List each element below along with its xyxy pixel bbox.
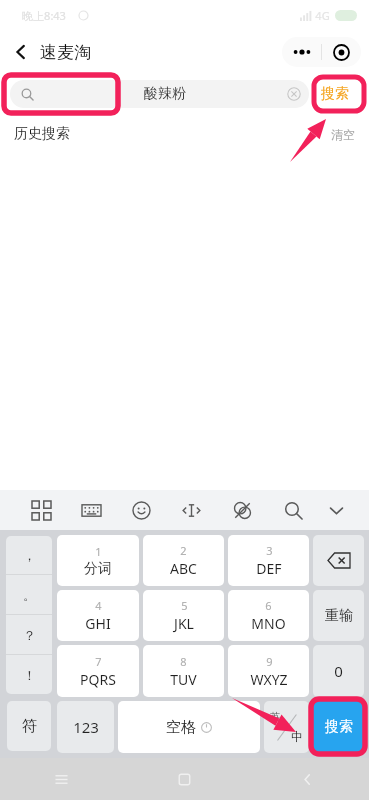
staticText: 5	[181, 598, 188, 613]
button[interactable]: 4	[57, 590, 139, 641]
staticText: 搜索	[321, 85, 349, 103]
staticText: 2	[180, 543, 187, 558]
staticText: 4G	[315, 8, 330, 23]
staticText: 3	[266, 543, 273, 558]
button[interactable]: Clip	[217, 490, 268, 530]
staticText: 中	[291, 729, 303, 744]
button[interactable]: 0	[313, 645, 364, 697]
staticText: 英	[270, 710, 280, 723]
staticText: ！	[23, 667, 36, 683]
button[interactable]: 重输	[313, 590, 364, 641]
staticText: MNO	[251, 614, 286, 633]
staticText: 酸辣粉	[43, 85, 287, 103]
button[interactable]: Clear	[287, 87, 301, 101]
staticText: 1	[95, 544, 102, 559]
button[interactable]: 2	[143, 535, 224, 586]
staticText: 。	[23, 587, 36, 603]
staticText: DEF	[256, 559, 282, 578]
button[interactable]: ，	[6, 536, 52, 574]
button[interactable]: 搜索	[309, 74, 361, 114]
button[interactable]: ！	[6, 655, 52, 694]
button[interactable]: Close	[322, 37, 361, 67]
staticText: 晚上8:43	[22, 8, 66, 23]
button[interactable]: 空格	[118, 701, 260, 753]
staticText: 历史搜索	[14, 125, 70, 143]
button[interactable]: 搜索	[313, 701, 364, 753]
staticText: 8	[180, 654, 187, 669]
staticText: GHI	[85, 614, 111, 633]
button[interactable]: 1	[57, 535, 139, 586]
button[interactable]: 9	[228, 645, 309, 697]
staticText: 分词	[84, 560, 112, 578]
button[interactable]: Emoji	[116, 490, 166, 530]
staticText: TUV	[170, 670, 197, 689]
button[interactable]: More	[282, 37, 321, 67]
button[interactable]: Apps	[16, 490, 66, 530]
staticText: ？	[23, 627, 36, 643]
button[interactable]: 符	[7, 701, 51, 751]
staticText: ABC	[170, 559, 197, 578]
staticText: WXYZ	[250, 670, 288, 689]
button[interactable]: 8	[143, 645, 224, 697]
button[interactable]: Back	[0, 30, 99, 74]
button[interactable]: 123	[57, 701, 114, 753]
staticText: 123	[73, 717, 99, 737]
staticText: 速麦淘	[40, 42, 91, 63]
staticText: 9	[266, 654, 273, 669]
button[interactable]: ？	[6, 615, 52, 654]
staticText: 0	[334, 661, 343, 681]
staticText: 清空	[331, 127, 355, 142]
button[interactable]: 6	[228, 590, 309, 641]
button[interactable]: 3	[228, 535, 309, 586]
button[interactable]: 英	[264, 701, 309, 753]
staticText: 6	[265, 598, 272, 613]
button[interactable]: Backspace	[313, 535, 364, 586]
staticText: 搜索	[325, 718, 353, 736]
button[interactable]: 酸辣粉	[10, 80, 309, 108]
staticText: 空格	[166, 718, 196, 737]
other: Back	[12, 43, 30, 61]
button[interactable]: 5	[143, 590, 224, 641]
button[interactable]: Hide keyboard	[319, 490, 353, 530]
staticText: 符	[22, 717, 37, 736]
button[interactable]: Keyboard	[66, 490, 116, 530]
staticText: 4	[95, 598, 102, 613]
button[interactable]: Cursor	[166, 490, 217, 530]
staticText: 7	[95, 654, 102, 669]
staticText: ，	[23, 547, 36, 563]
staticText: JKL	[174, 614, 194, 633]
button[interactable]: 7	[57, 645, 139, 697]
staticText: PQRS	[80, 670, 116, 689]
button[interactable]: 。	[6, 575, 52, 614]
staticText: 重输	[325, 607, 353, 625]
button[interactable]: 清空	[317, 114, 369, 154]
button[interactable]: Search	[268, 490, 319, 530]
